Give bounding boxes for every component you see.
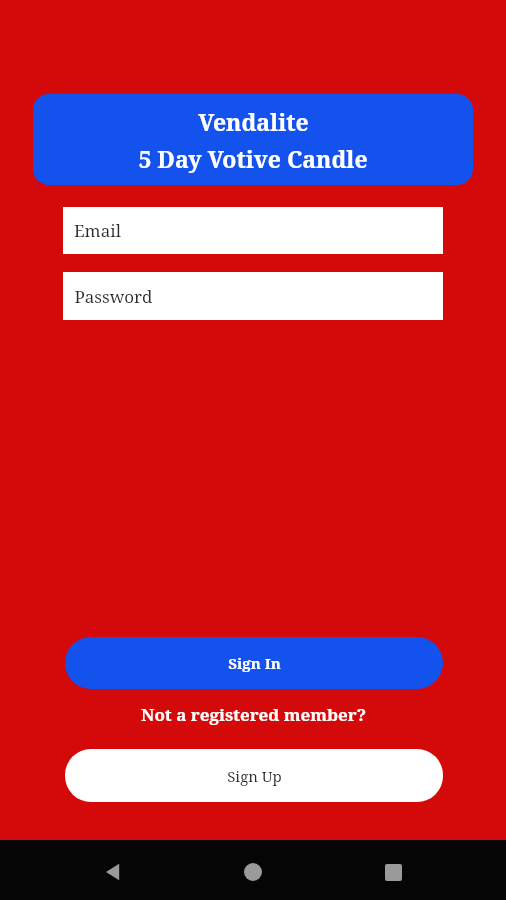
button[interactable]: Vendalite (33, 94, 473, 185)
staticText: Password (74, 285, 153, 308)
staticText: Sign Up (227, 766, 282, 786)
button[interactable]: Password (63, 272, 443, 320)
button[interactable]: Recent apps (369, 848, 417, 896)
button[interactable]: Sign In (65, 637, 443, 689)
button[interactable]: Email (63, 207, 443, 254)
staticText: Not a registered member? (141, 703, 366, 726)
button[interactable]: Home (229, 848, 277, 896)
staticText: 5 Day Votive Candle (138, 143, 368, 174)
staticText: Sign In (228, 653, 281, 673)
staticText: Vendalite (198, 106, 309, 137)
staticText: Email (74, 219, 121, 242)
button[interactable]: Back (89, 848, 137, 896)
button[interactable]: Sign Up (65, 749, 443, 802)
